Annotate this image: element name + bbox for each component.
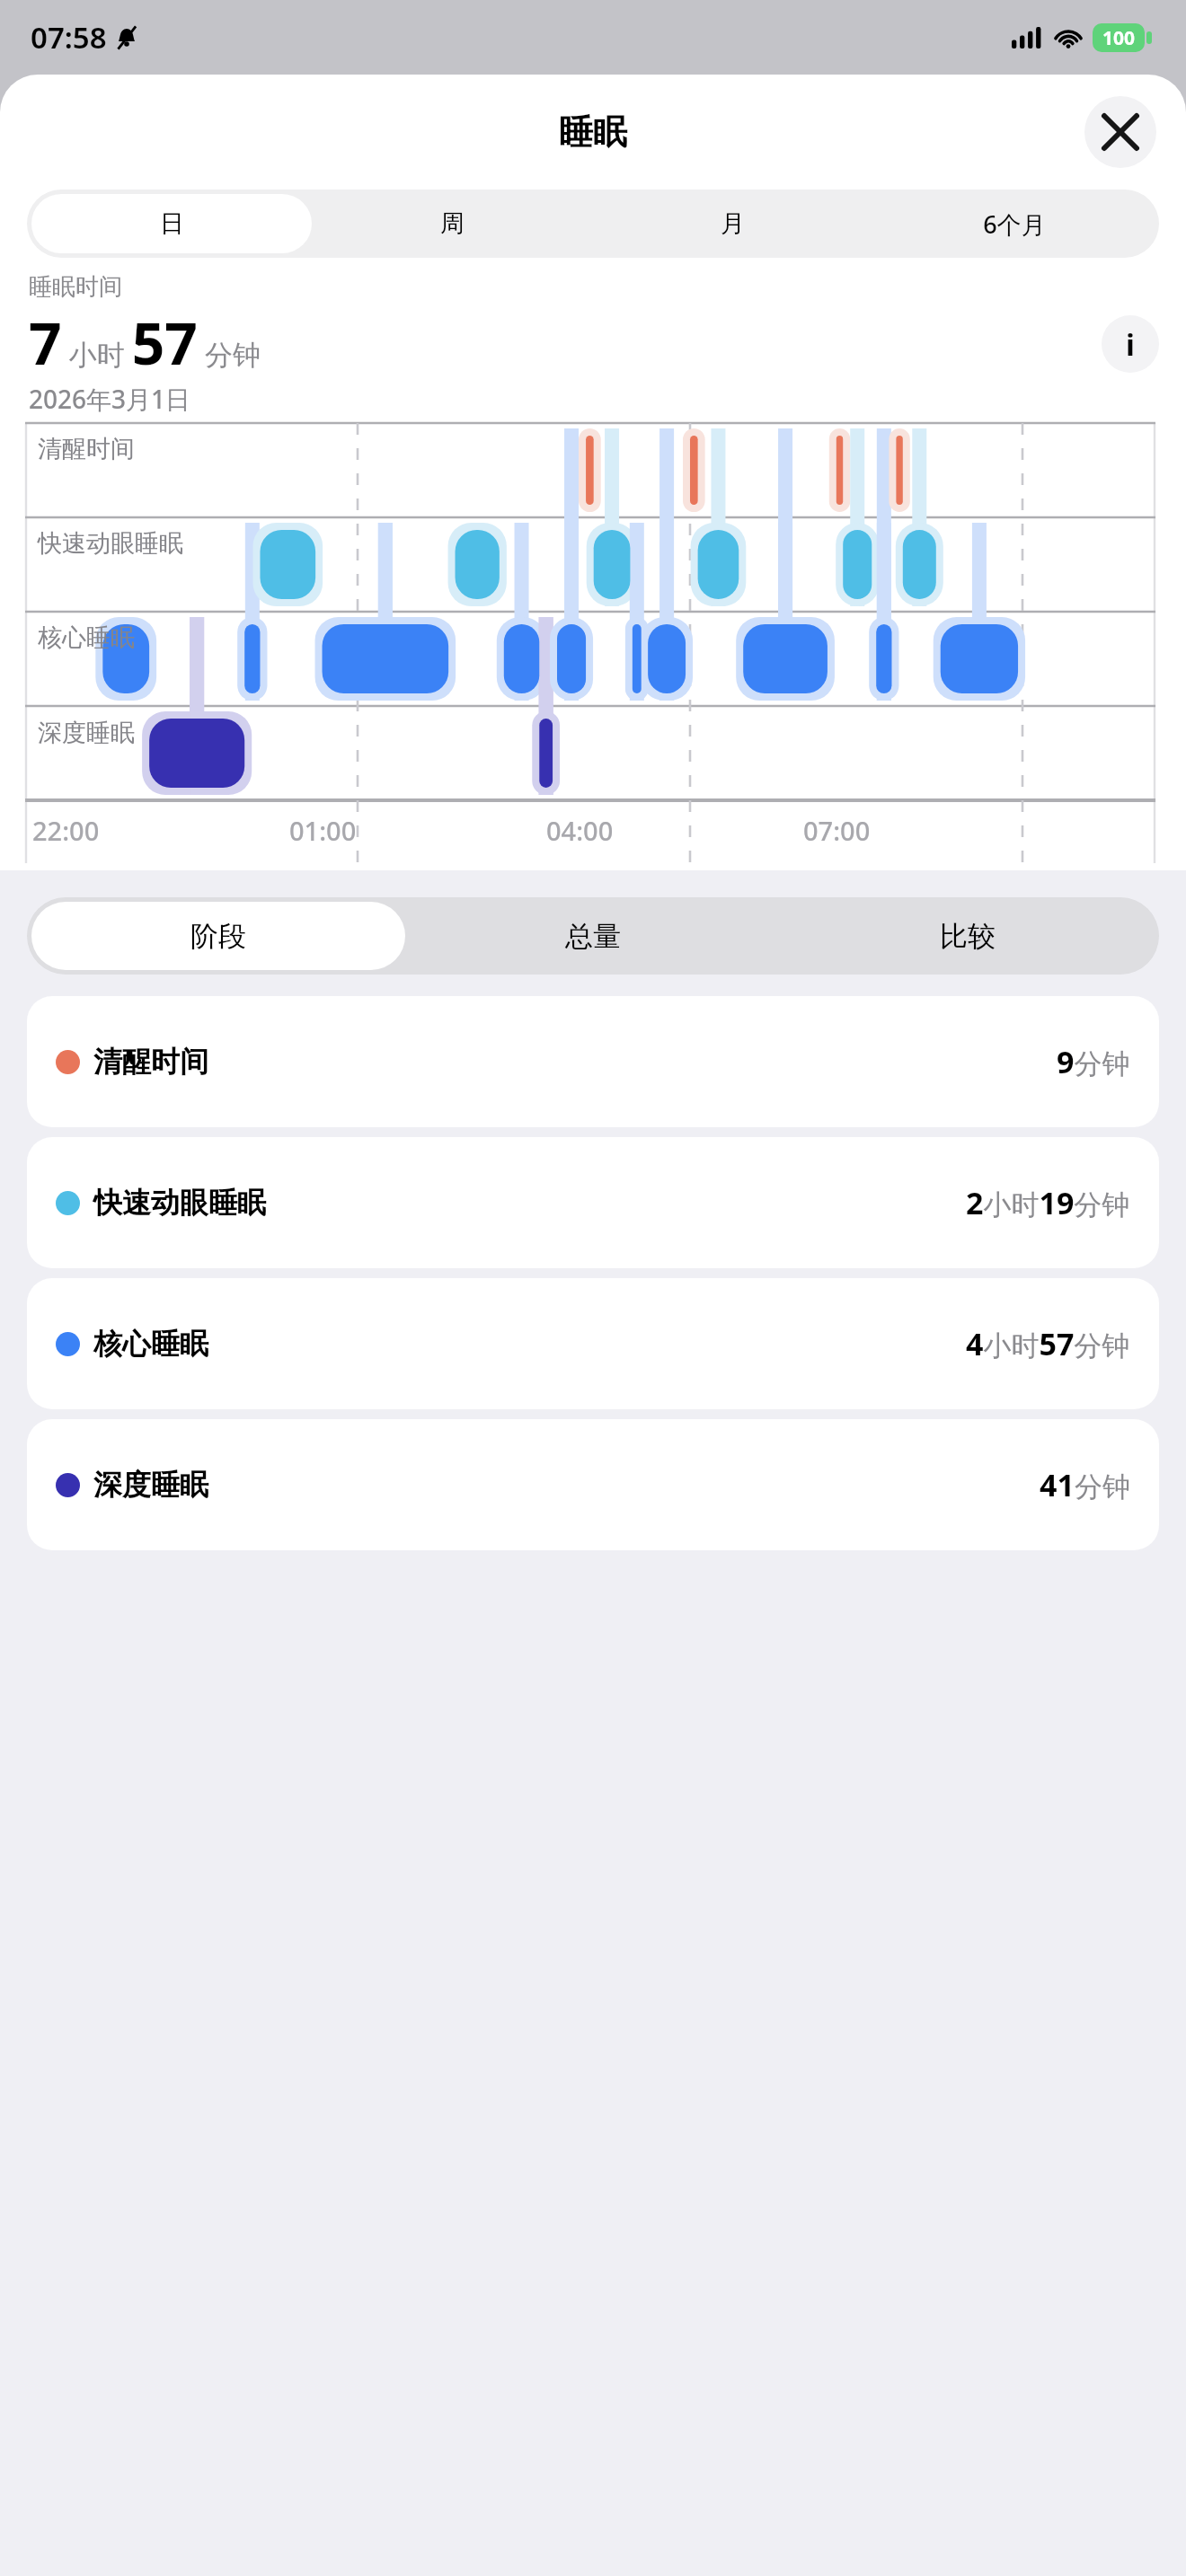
- button[interactable]: 周: [312, 194, 592, 253]
- staticText: 深度睡眠: [38, 718, 135, 748]
- button[interactable]: 清醒时间: [27, 996, 1159, 1127]
- staticText: 07:00: [803, 813, 871, 848]
- button[interactable]: Info: [1102, 315, 1159, 373]
- staticText: 清醒时间: [93, 1044, 208, 1080]
- button[interactable]: 核心睡眠: [27, 1278, 1159, 1409]
- staticText: 日: [160, 208, 184, 239]
- staticText: 快速动眼睡眠: [93, 1185, 266, 1221]
- staticText: 04:00: [546, 813, 614, 848]
- staticText: 100: [1102, 25, 1136, 51]
- staticText: 2小时19分钟: [966, 1182, 1130, 1223]
- staticText: 睡眠时间: [29, 272, 122, 302]
- staticText: 快速动眼睡眠: [38, 528, 183, 559]
- staticText: 睡眠: [559, 110, 627, 154]
- staticText: 比较: [940, 919, 996, 954]
- button[interactable]: 比较: [780, 902, 1155, 970]
- staticText: 深度睡眠: [93, 1467, 208, 1503]
- button[interactable]: 快速动眼睡眠: [27, 1137, 1159, 1268]
- staticText: 7 小时 57 分钟: [29, 304, 261, 382]
- staticText: 清醒时间: [38, 434, 135, 464]
- button[interactable]: Close: [1084, 96, 1156, 168]
- staticText: 核心睡眠: [38, 622, 135, 653]
- staticText: 核心睡眠: [93, 1326, 208, 1362]
- staticText: 9分钟: [1057, 1041, 1130, 1082]
- staticText: 41分钟: [1040, 1464, 1130, 1505]
- staticText: 总量: [565, 919, 621, 954]
- staticText: 4小时57分钟: [966, 1323, 1130, 1364]
- staticText: 2026年3月1日: [29, 382, 191, 416]
- button[interactable]: 阶段: [31, 902, 405, 970]
- staticText: 阶段: [190, 919, 246, 954]
- staticText: 22:00: [32, 813, 100, 848]
- button[interactable]: 月: [592, 194, 873, 253]
- staticText: 周: [440, 208, 465, 239]
- staticText: i: [1126, 324, 1135, 365]
- staticText: 月: [721, 208, 745, 239]
- staticText: 01:00: [289, 813, 357, 848]
- button[interactable]: 6个月: [873, 194, 1155, 253]
- staticText: 6个月: [983, 207, 1046, 241]
- button[interactable]: 日: [31, 194, 312, 253]
- staticText: 07:58: [31, 17, 107, 57]
- button[interactable]: 总量: [405, 902, 780, 970]
- button[interactable]: 深度睡眠: [27, 1419, 1159, 1550]
